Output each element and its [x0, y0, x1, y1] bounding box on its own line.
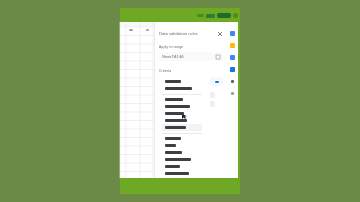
staticText: Criteria [159, 68, 172, 73]
button[interactable] [162, 78, 202, 85]
button[interactable]: Side app 4 [228, 65, 237, 74]
button[interactable]: Side app 2 [228, 41, 237, 50]
button[interactable] [162, 156, 202, 163]
button[interactable] [162, 170, 202, 176]
button[interactable] [162, 110, 202, 117]
button[interactable]: Side app 3 [228, 53, 237, 62]
button[interactable] [162, 135, 202, 142]
button[interactable] [162, 96, 202, 103]
button[interactable] [206, 14, 215, 18]
button[interactable] [162, 142, 202, 149]
button[interactable]: Side app 6 [228, 89, 237, 98]
staticText: Sheet1!A1:A5 [162, 54, 184, 59]
button[interactable]: Account [233, 13, 238, 18]
button[interactable] [210, 77, 223, 86]
button[interactable] [162, 117, 202, 124]
button[interactable]: Side app 5 [228, 77, 237, 86]
button[interactable]: Close [216, 30, 223, 37]
button[interactable] [162, 85, 202, 92]
button[interactable] [162, 163, 202, 170]
button[interactable] [162, 149, 202, 156]
button[interactable] [162, 124, 202, 131]
staticText: Apply to range [159, 44, 184, 49]
button[interactable]: Side app 1 [228, 29, 237, 38]
button[interactable] [162, 103, 202, 110]
button[interactable]: Sheet1!A1:A5 [159, 52, 223, 61]
staticText: Data validation rules [159, 31, 198, 36]
button[interactable] [217, 13, 231, 18]
